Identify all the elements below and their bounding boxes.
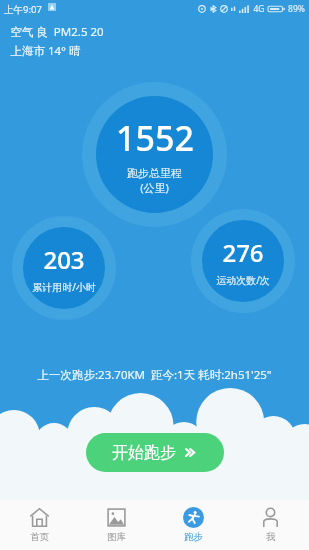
staticText: 203 xyxy=(43,243,85,276)
staticText: 上午9:07 xyxy=(4,3,42,16)
staticText: 上一次跑步:23.70KM 距今:1天 耗时:2h51'25" xyxy=(37,367,272,383)
button[interactable]: 开始跑步 xyxy=(86,433,224,472)
button[interactable]: 首页 xyxy=(0,500,78,550)
staticText: 89% xyxy=(288,3,305,15)
staticText: 4G xyxy=(253,3,265,15)
staticText: 运动次数/次 xyxy=(216,273,270,287)
other: 首页 xyxy=(29,507,50,528)
staticText: 累计用时/小时 xyxy=(32,280,96,294)
staticText: 1552 xyxy=(116,115,194,161)
staticText: 开始跑步 xyxy=(112,443,176,463)
staticText: 我 xyxy=(266,531,276,543)
button[interactable]: 跑步 xyxy=(155,500,232,550)
staticText: 上海市 14° 晴 xyxy=(10,43,81,59)
button[interactable]: 我 xyxy=(232,500,309,550)
staticText: 跑步 xyxy=(184,531,203,543)
staticText: 空气 良 PM2.5 20 xyxy=(10,24,104,40)
other: 跑步 xyxy=(183,507,204,528)
staticText: 首页 xyxy=(30,531,49,543)
staticText: 跑步总里程 xyxy=(127,166,182,180)
button[interactable]: 图库 xyxy=(78,500,155,550)
staticText: 图库 xyxy=(107,531,126,543)
other: 图库 xyxy=(106,507,127,528)
staticText: 276 xyxy=(222,236,264,269)
other: 我 xyxy=(260,507,281,528)
staticText: (公里) xyxy=(140,180,169,195)
